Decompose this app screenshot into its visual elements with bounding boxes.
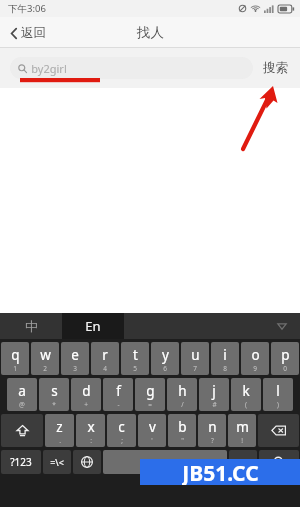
staticText: 下午3:06 — [8, 2, 46, 15]
staticText: 6 — [163, 364, 167, 373]
button[interactable]: Backspace — [258, 414, 299, 447]
staticText: g — [146, 382, 155, 400]
staticText: 找人 — [137, 24, 164, 41]
staticText: ! — [241, 436, 243, 445]
staticText: 7 — [193, 364, 197, 373]
button[interactable]: b — [168, 414, 196, 447]
staticText: u — [191, 346, 200, 364]
staticText: 9 — [253, 364, 257, 373]
staticText: / — [181, 400, 184, 409]
staticText: f — [116, 382, 121, 400]
button[interactable]: English — [103, 450, 227, 474]
button[interactable]: 搜索 — [261, 56, 290, 80]
staticText: y — [162, 346, 169, 364]
staticText: 3 — [73, 364, 77, 373]
staticText: w — [40, 346, 51, 364]
button[interactable]: g — [135, 378, 165, 411]
staticText: z — [56, 418, 63, 436]
staticText: # — [212, 400, 217, 409]
button[interactable]: z — [45, 414, 74, 447]
staticText: s — [51, 382, 58, 400]
button[interactable]: e — [61, 342, 89, 375]
staticText: ; — [121, 436, 123, 445]
staticText: 5 — [133, 364, 137, 373]
staticText: t — [133, 346, 138, 364]
staticText: c — [118, 418, 125, 436]
button[interactable]: c — [107, 414, 136, 447]
staticText: 中 — [25, 318, 38, 334]
button[interactable]: l — [263, 378, 293, 411]
staticText: q — [11, 346, 20, 364]
button[interactable]: d — [71, 378, 101, 411]
staticText: x — [87, 418, 95, 436]
button[interactable]: k — [231, 378, 261, 411]
button[interactable]: a — [7, 378, 37, 411]
button[interactable]: w — [31, 342, 59, 375]
staticText: * — [52, 400, 56, 409]
staticText: d — [82, 382, 91, 400]
staticText: ? — [211, 436, 214, 445]
button[interactable]: ?123 — [1, 450, 41, 474]
staticText: JB51.CC — [182, 459, 259, 485]
button[interactable]: v — [138, 414, 166, 447]
button[interactable]: r — [91, 342, 119, 375]
staticText: ( — [245, 400, 247, 409]
button[interactable]: . — [229, 450, 257, 474]
staticText: n — [208, 418, 217, 436]
staticText: : — [90, 436, 92, 445]
staticText: 搜索 — [263, 60, 288, 76]
staticText: + — [84, 400, 88, 409]
button[interactable]: 中 — [0, 313, 62, 339]
button[interactable]: Change language — [73, 450, 101, 474]
button[interactable]: En — [62, 313, 124, 339]
staticText: - — [117, 400, 120, 409]
staticText: a — [18, 382, 26, 400]
staticText: ?123 — [10, 455, 32, 469]
staticText: ) — [277, 400, 279, 409]
staticText: h — [178, 382, 187, 400]
button[interactable]: 返回 — [7, 21, 49, 45]
button[interactable]: o — [241, 342, 269, 375]
staticText: English — [149, 456, 182, 469]
staticText: = — [148, 400, 152, 409]
button[interactable]: j — [199, 378, 229, 411]
staticText: p — [281, 346, 290, 364]
button[interactable]: p — [271, 342, 299, 375]
button[interactable]: s — [39, 378, 69, 411]
staticText: o — [251, 346, 260, 364]
staticText: v — [149, 418, 156, 436]
button[interactable]: u — [181, 342, 209, 375]
staticText: En — [85, 317, 101, 335]
staticText: . — [59, 436, 61, 445]
staticText: 8 — [223, 364, 227, 373]
button[interactable]: q — [1, 342, 29, 375]
button[interactable]: by2girl — [10, 57, 253, 79]
button[interactable]: Shift — [1, 414, 43, 447]
staticText: l — [276, 382, 280, 400]
button[interactable]: t — [121, 342, 149, 375]
staticText: =\< — [50, 456, 64, 468]
staticText: . — [242, 455, 245, 470]
button[interactable]: y — [151, 342, 179, 375]
button[interactable]: x — [76, 414, 105, 447]
staticText: 0 — [283, 364, 287, 373]
button[interactable]: n — [198, 414, 226, 447]
button[interactable]: Symbols — [43, 450, 71, 474]
staticText: " — [181, 436, 184, 445]
staticText: m — [236, 418, 249, 436]
staticText: by2girl — [31, 61, 67, 76]
button[interactable]: h — [167, 378, 197, 411]
button[interactable]: i — [211, 342, 239, 375]
staticText: j — [212, 382, 216, 400]
staticText: 2 — [43, 364, 47, 373]
staticText: k — [242, 382, 250, 400]
staticText: r — [102, 346, 108, 364]
staticText: e — [71, 346, 79, 364]
button[interactable]: Search — [259, 450, 299, 474]
button[interactable]: f — [103, 378, 133, 411]
button[interactable]: Hide keyboard — [264, 313, 300, 339]
button[interactable]: m — [228, 414, 256, 447]
staticText: i — [223, 346, 227, 364]
staticText: b — [178, 418, 187, 436]
staticText: 4 — [103, 364, 107, 373]
